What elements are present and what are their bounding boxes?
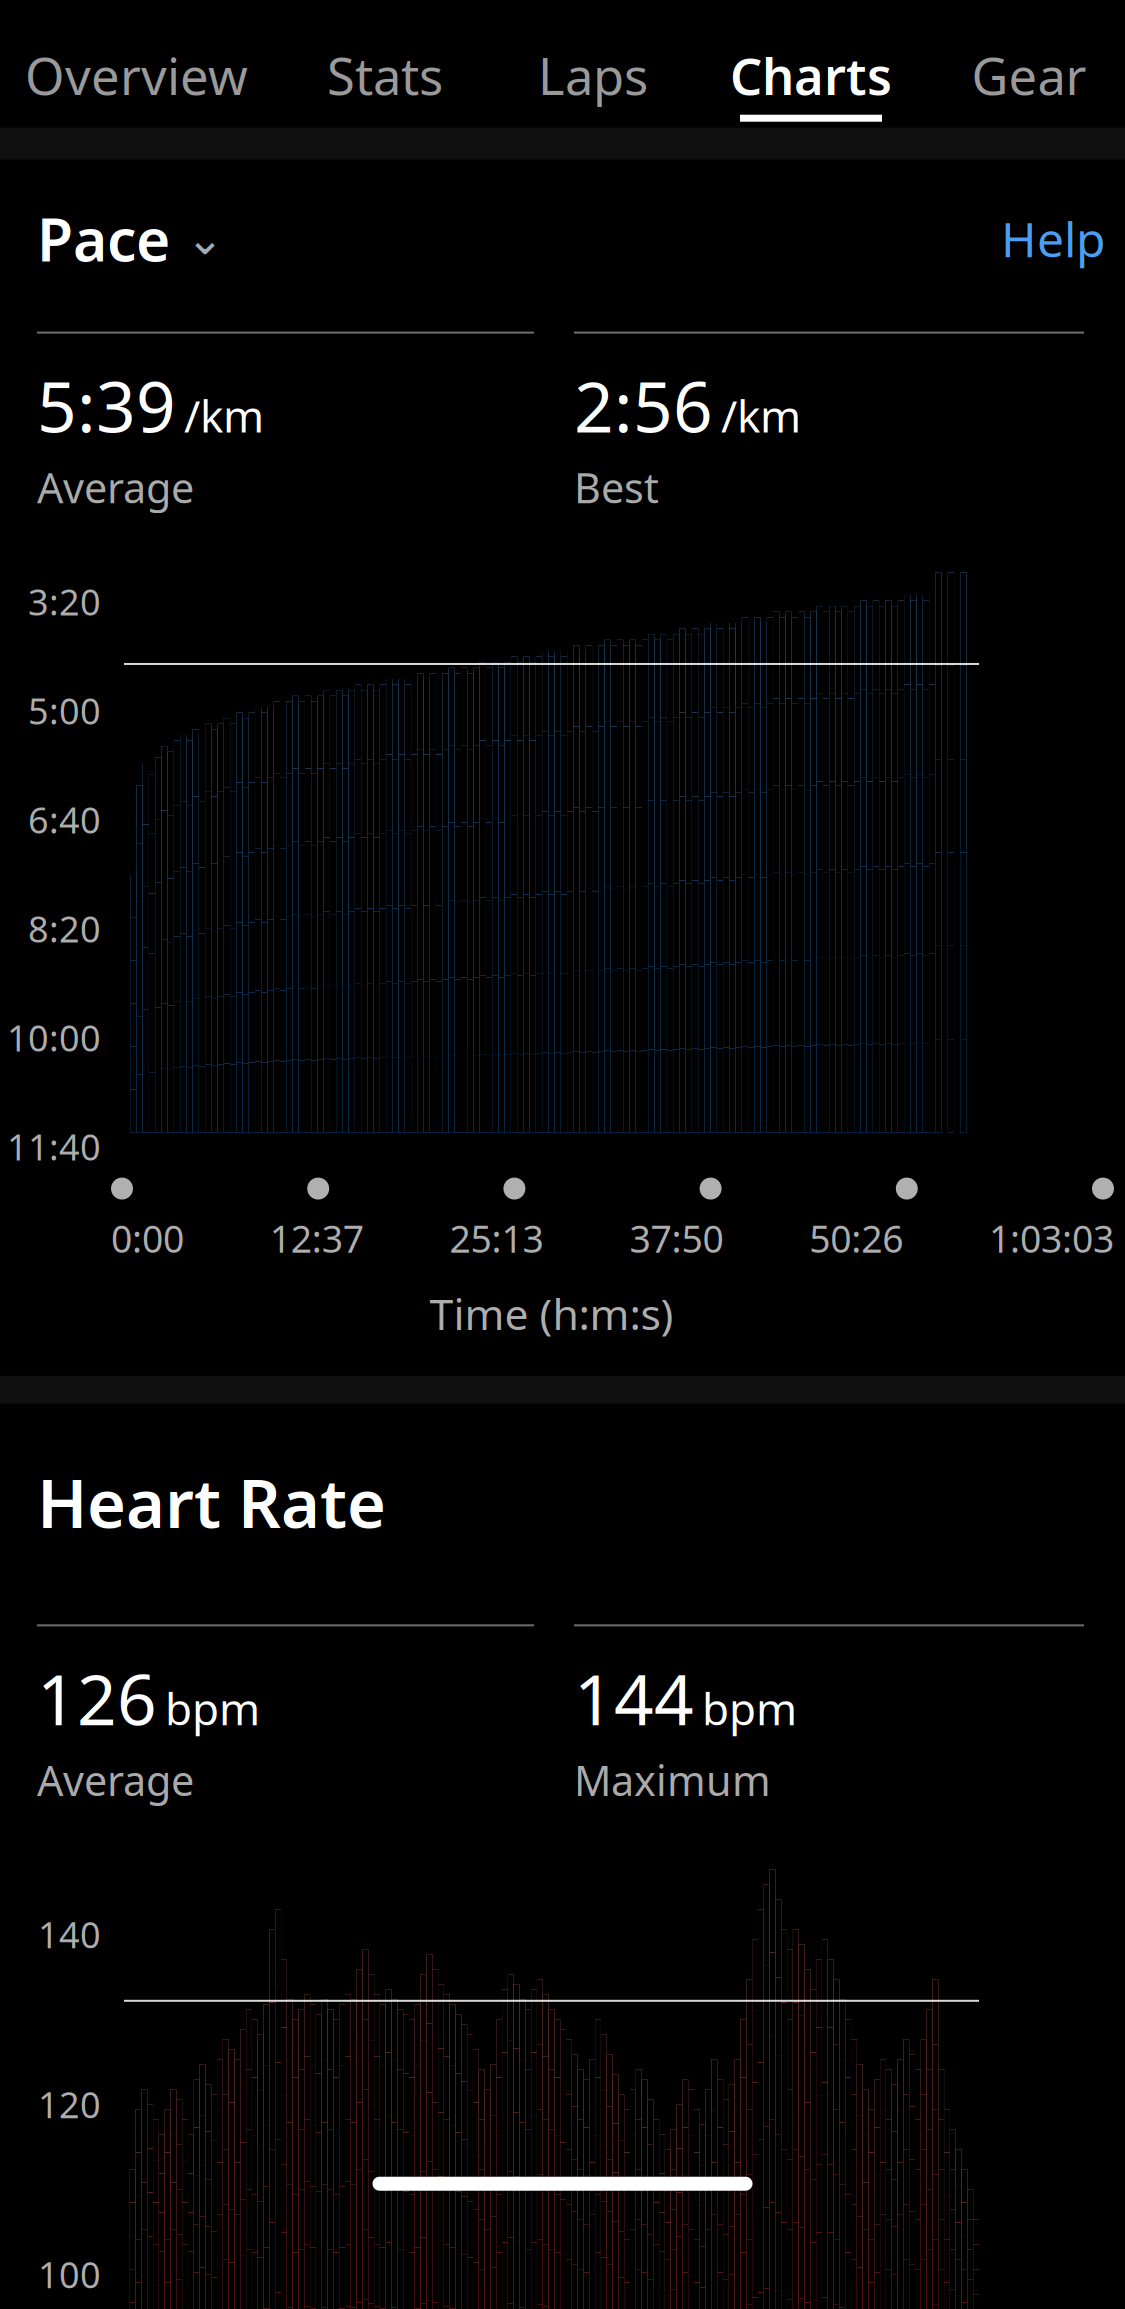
button[interactable]: Laps (522, 20, 664, 128)
staticText: Overview (25, 42, 248, 109)
staticText: Best (574, 460, 659, 515)
staticText: 6:40 (28, 796, 101, 843)
staticText: Average (37, 1752, 194, 1807)
staticText: 120 (38, 2080, 101, 2128)
staticText: 140 (38, 1910, 101, 1958)
staticText: 11:40 (7, 1123, 101, 1170)
staticText: 1:03:03 (989, 1214, 1114, 1263)
staticText: bpm (702, 1679, 797, 1737)
staticText: 2:56 (574, 360, 713, 452)
staticText: 10:00 (7, 1014, 101, 1061)
button[interactable]: Gear (958, 20, 1100, 128)
button[interactable]: Pace (37, 200, 224, 278)
button[interactable]: Charts (730, 20, 892, 128)
staticText: 8:20 (28, 905, 101, 952)
staticText: Charts (730, 42, 892, 109)
staticText: 144 (574, 1652, 694, 1744)
button[interactable]: Help (1001, 207, 1106, 270)
staticText: Maximum (574, 1752, 771, 1807)
staticText: Gear (971, 42, 1086, 109)
staticText: /km (184, 386, 264, 445)
staticText: 37:50 (629, 1214, 723, 1263)
staticText: 126 (37, 1652, 157, 1744)
staticText: bpm (165, 1679, 260, 1737)
staticText: Stats (327, 42, 443, 109)
staticText: 5:00 (28, 687, 101, 734)
button[interactable]: Overview (25, 20, 248, 128)
staticText: Average (37, 460, 194, 515)
staticText: 100 (38, 2250, 101, 2298)
staticText: 12:37 (270, 1214, 364, 1263)
staticText: Laps (538, 42, 648, 109)
staticText: Heart Rate (37, 1458, 386, 1546)
staticText: Help (1001, 207, 1106, 270)
staticText: 3:20 (28, 578, 101, 625)
button[interactable]: Stats (314, 20, 456, 128)
staticText: 50:26 (809, 1214, 903, 1263)
staticText: Time (h:m:s) (429, 1285, 673, 1342)
staticText: 0:00 (111, 1214, 184, 1263)
staticText: Pace (37, 200, 170, 278)
staticText: 5:39 (37, 360, 176, 452)
staticText: 25:13 (450, 1214, 544, 1263)
staticText: /km (721, 386, 801, 445)
staticText: ⌄ (186, 213, 224, 264)
